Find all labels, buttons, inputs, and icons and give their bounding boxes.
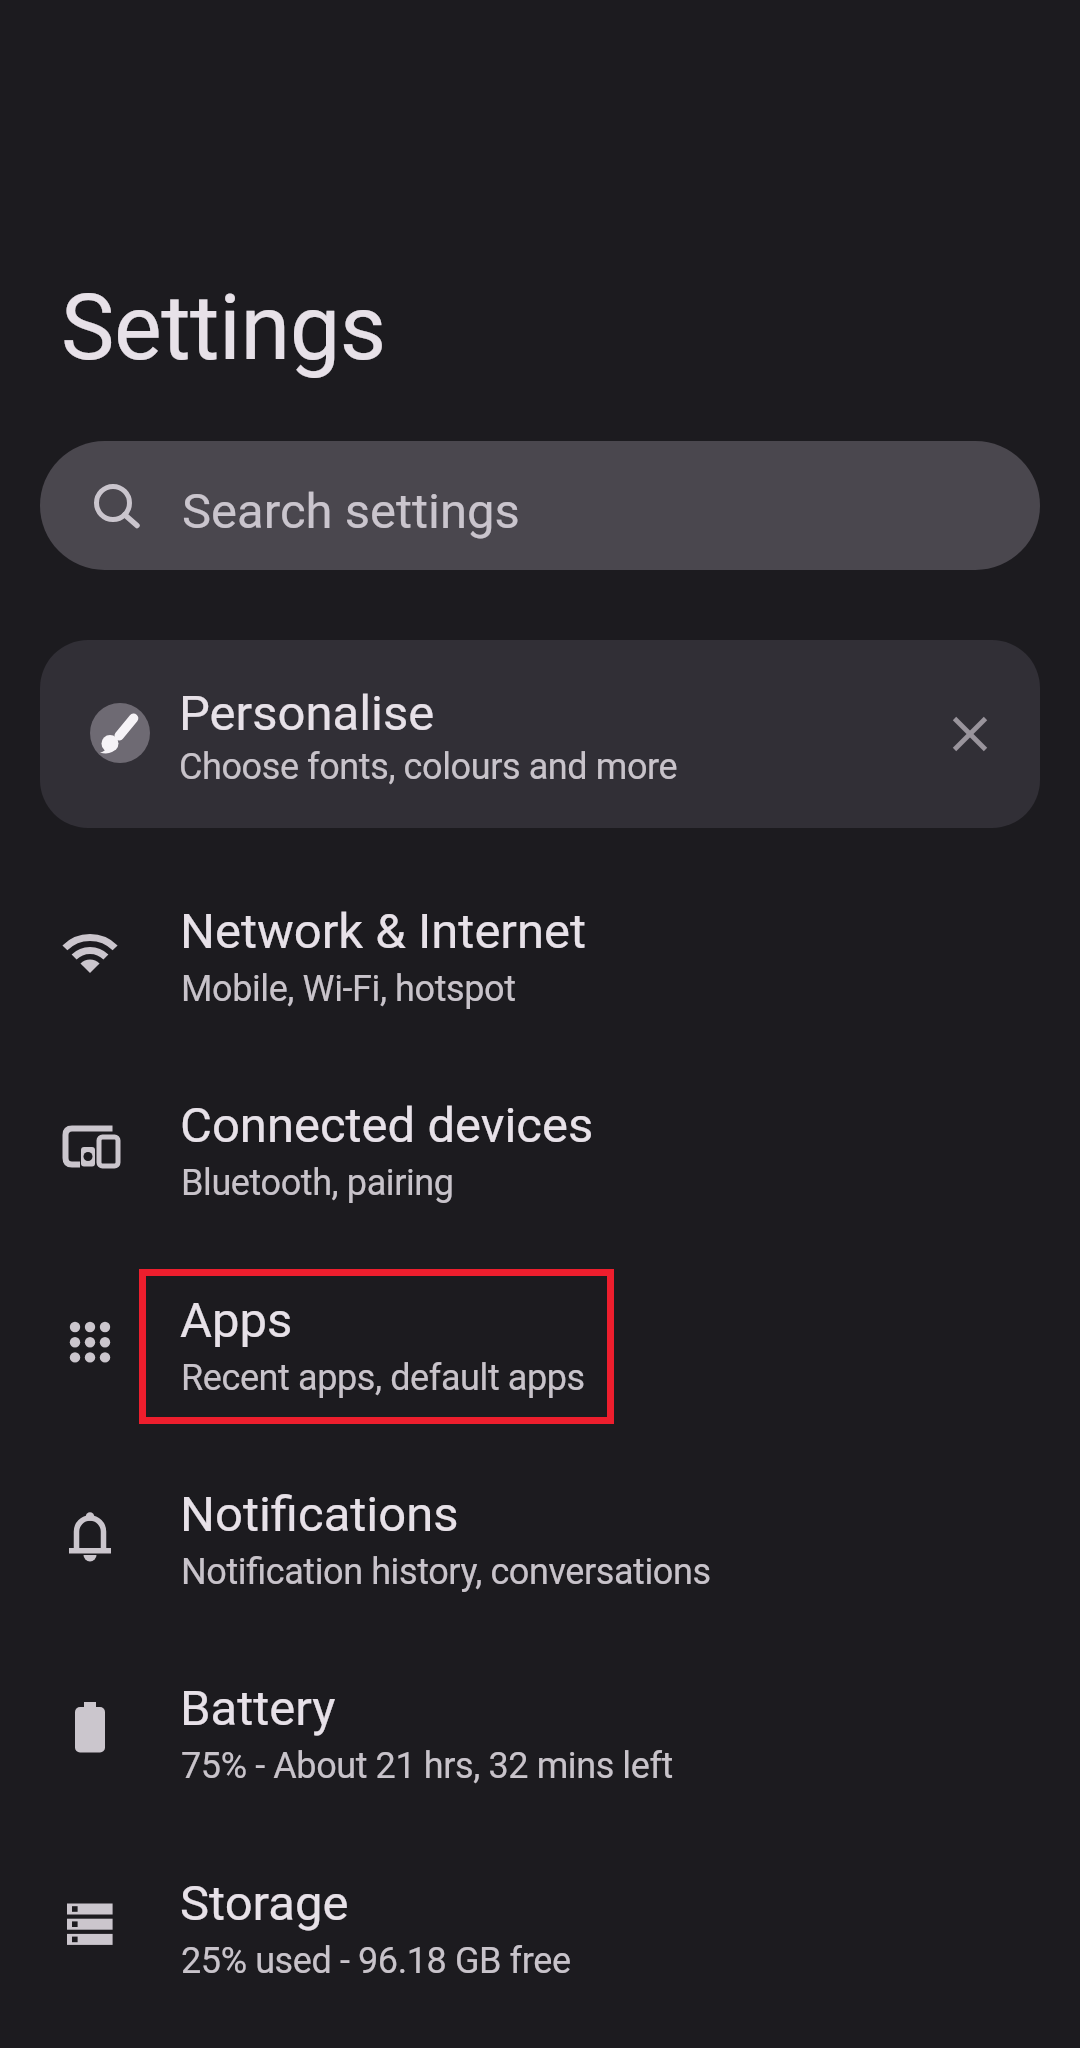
button[interactable]: Notifications bbox=[0, 1447, 1080, 1641]
button[interactable]: Search settings bbox=[40, 441, 1040, 570]
staticText: Connected devices bbox=[180, 1097, 594, 1154]
staticText: 75% - About 21 hrs, 32 mins left bbox=[181, 1745, 673, 1787]
staticText: Network & Internet bbox=[180, 903, 587, 960]
button[interactable]: Personalise bbox=[40, 640, 1040, 828]
button[interactable]: Storage bbox=[0, 1836, 1080, 2030]
staticText: 25% used - 96.18 GB free bbox=[181, 1940, 571, 1982]
staticText: Personalise bbox=[179, 685, 435, 742]
button[interactable]: Network & Internet bbox=[0, 864, 1080, 1058]
button[interactable]: Battery bbox=[0, 1641, 1080, 1835]
staticText: Battery bbox=[180, 1680, 336, 1737]
staticText: Storage bbox=[180, 1875, 349, 1932]
button[interactable] bbox=[948, 712, 992, 756]
staticText: Recent apps, default apps bbox=[181, 1357, 585, 1399]
staticText: Choose fonts, colours and more bbox=[179, 746, 678, 788]
button[interactable]: Apps bbox=[0, 1253, 1080, 1447]
staticText: Notifications bbox=[180, 1486, 459, 1543]
staticText: Settings bbox=[61, 276, 386, 381]
staticText: Apps bbox=[180, 1292, 293, 1349]
staticText: Mobile, Wi-Fi, hotspot bbox=[181, 968, 516, 1010]
button[interactable]: Connected devices bbox=[0, 1058, 1080, 1252]
staticText: Bluetooth, pairing bbox=[181, 1162, 454, 1204]
staticText: Notification history, conversations bbox=[181, 1551, 711, 1593]
staticText: Search settings bbox=[182, 483, 520, 540]
